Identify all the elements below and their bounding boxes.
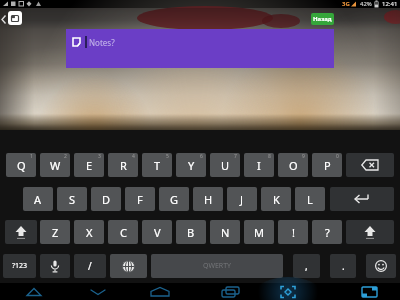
button[interactable]: M [244, 220, 274, 244]
button[interactable]: S [57, 187, 87, 211]
staticText: O [289, 158, 298, 173]
staticText: 8 [268, 153, 271, 160]
button[interactable]: O [278, 153, 308, 177]
staticText: Q [17, 158, 26, 173]
button[interactable]: C [108, 220, 138, 244]
button[interactable]: A [23, 187, 53, 211]
button[interactable]: ! [278, 220, 308, 244]
staticText: 4 [132, 153, 135, 160]
button[interactable] [22, 283, 46, 300]
staticText: Назад [313, 15, 332, 23]
staticText: 9 [302, 153, 305, 160]
button[interactable]: V [142, 220, 172, 244]
button[interactable] [40, 254, 70, 278]
button[interactable] [86, 283, 110, 300]
button[interactable]: K [261, 187, 291, 211]
staticText: , [305, 259, 308, 273]
staticText: 42% [360, 0, 372, 8]
staticText: 1 [30, 153, 33, 160]
button[interactable] [218, 283, 242, 300]
button[interactable]: U [210, 153, 240, 177]
staticText: K [273, 192, 280, 207]
button[interactable]: Назад [311, 13, 334, 25]
button[interactable]: P [312, 153, 342, 177]
button[interactable]: ?123 [3, 254, 36, 278]
staticText: B [187, 225, 195, 240]
staticText: S [69, 192, 76, 207]
staticText: ! [292, 225, 295, 240]
staticText: T [154, 158, 161, 173]
staticText: QWERTY [203, 261, 232, 271]
staticText: L [307, 192, 313, 207]
staticText: . [342, 259, 345, 273]
button[interactable]: , [293, 254, 320, 278]
button[interactable]: J [227, 187, 257, 211]
staticText: R [120, 158, 127, 173]
button[interactable]: Z [40, 220, 70, 244]
button[interactable] [8, 11, 22, 25]
staticText: C [120, 225, 127, 240]
staticText: H [204, 192, 213, 207]
button[interactable]: B [176, 220, 206, 244]
staticText: 0 [336, 153, 339, 160]
staticText: Notes? [89, 37, 115, 48]
staticText: X [86, 225, 93, 240]
button[interactable]: Y [176, 153, 206, 177]
staticText: V [154, 225, 161, 240]
button[interactable]: ? [312, 220, 342, 244]
button[interactable]: N [210, 220, 240, 244]
staticText: U [221, 158, 230, 173]
button[interactable]: T [142, 153, 172, 177]
staticText: 7 [234, 153, 237, 160]
button[interactable]: W [40, 153, 70, 177]
button[interactable] [5, 220, 37, 244]
staticText: 3 [98, 153, 101, 160]
staticText: M [254, 225, 264, 240]
button[interactable] [148, 283, 172, 300]
button[interactable]: D [91, 187, 121, 211]
staticText: N [221, 225, 230, 240]
staticText: E [86, 158, 93, 173]
staticText: D [102, 192, 111, 207]
staticText: 5 [166, 153, 169, 160]
staticText: P [324, 158, 331, 173]
button[interactable] [330, 187, 394, 211]
button[interactable] [366, 254, 396, 278]
button[interactable]: / [74, 254, 106, 278]
staticText: 12:41 [382, 0, 398, 8]
button[interactable]: F [125, 187, 155, 211]
button[interactable]: Notes? [66, 29, 334, 68]
staticText: 2 [64, 153, 67, 160]
button[interactable] [110, 254, 147, 278]
staticText: 6 [200, 153, 203, 160]
button[interactable] [346, 220, 394, 244]
button[interactable]: R [108, 153, 138, 177]
button[interactable] [358, 283, 382, 300]
staticText: Y [188, 158, 195, 173]
button[interactable]: QWERTY [151, 254, 283, 278]
button[interactable]: E [74, 153, 104, 177]
staticText: ?123 [12, 261, 28, 271]
staticText: 3G [342, 0, 350, 8]
staticText: I [257, 158, 261, 173]
staticText: Z [52, 225, 59, 240]
staticText: F [137, 192, 143, 207]
button[interactable]: X [74, 220, 104, 244]
button[interactable] [346, 153, 394, 177]
button[interactable]: L [295, 187, 325, 211]
button[interactable]: Q [6, 153, 36, 177]
staticText: ? [325, 225, 330, 240]
staticText: A [34, 192, 42, 207]
staticText: G [170, 192, 179, 207]
button[interactable]: H [193, 187, 223, 211]
button[interactable]: . [330, 254, 356, 278]
staticText: W [50, 158, 61, 173]
button[interactable]: I [244, 153, 274, 177]
staticText: / [88, 259, 92, 273]
button[interactable]: G [159, 187, 189, 211]
staticText: J [240, 192, 244, 207]
button[interactable] [276, 283, 300, 300]
